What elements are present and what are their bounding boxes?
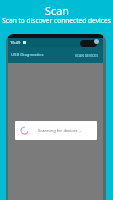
button[interactable]: SCAN DEVICES xyxy=(73,51,101,60)
button[interactable]: Scanning for devices ... xyxy=(15,121,97,140)
staticText: USB Diagnostics xyxy=(11,52,44,58)
staticText: Scan to discover connected devices xyxy=(2,16,111,25)
staticText: Scan xyxy=(45,3,69,18)
staticText: Scanning for devices ... xyxy=(38,128,82,134)
staticText: 16:49 xyxy=(10,40,21,45)
staticText: SCAN DEVICES xyxy=(75,53,99,58)
other: Front camera xyxy=(80,40,97,47)
